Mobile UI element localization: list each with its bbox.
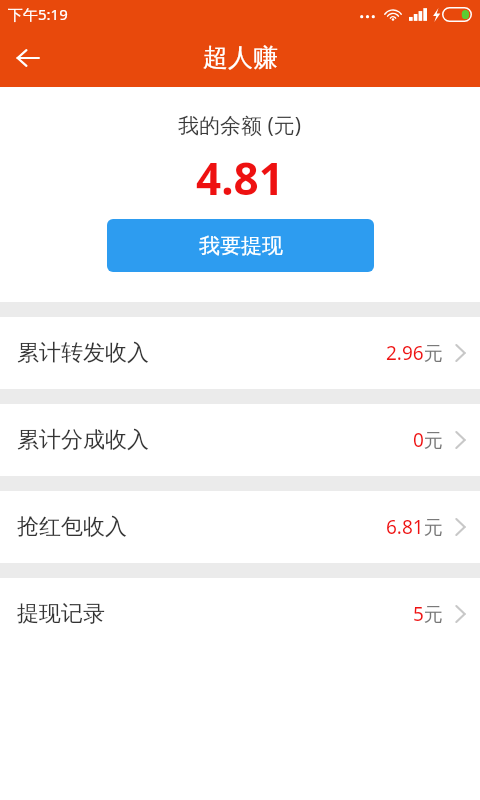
staticText: 4.81 bbox=[196, 148, 284, 208]
button[interactable]: 提现记录 bbox=[0, 578, 480, 650]
staticText: 6.81元 bbox=[386, 514, 443, 540]
staticText: 提现记录 bbox=[17, 600, 105, 628]
button[interactable]: 抢红包收入 bbox=[0, 491, 480, 563]
button[interactable]: 累计分成收入 bbox=[0, 404, 480, 476]
staticText: 我要提现 bbox=[199, 233, 283, 259]
staticText: 2.96元 bbox=[386, 340, 443, 366]
staticText: 抢红包收入 bbox=[17, 513, 127, 541]
button[interactable]: Back bbox=[0, 30, 56, 86]
staticText: 我的余额 (元) bbox=[178, 111, 302, 140]
staticText: 累计转发收入 bbox=[17, 339, 149, 367]
staticText: 超人赚 bbox=[203, 42, 278, 73]
staticText: 下午5:19 bbox=[8, 4, 68, 24]
button[interactable]: 我要提现 bbox=[107, 219, 374, 272]
button[interactable]: 累计转发收入 bbox=[0, 317, 480, 389]
staticText: 5元 bbox=[413, 601, 443, 627]
staticText: 0元 bbox=[413, 427, 443, 453]
staticText: 累计分成收入 bbox=[17, 426, 149, 454]
